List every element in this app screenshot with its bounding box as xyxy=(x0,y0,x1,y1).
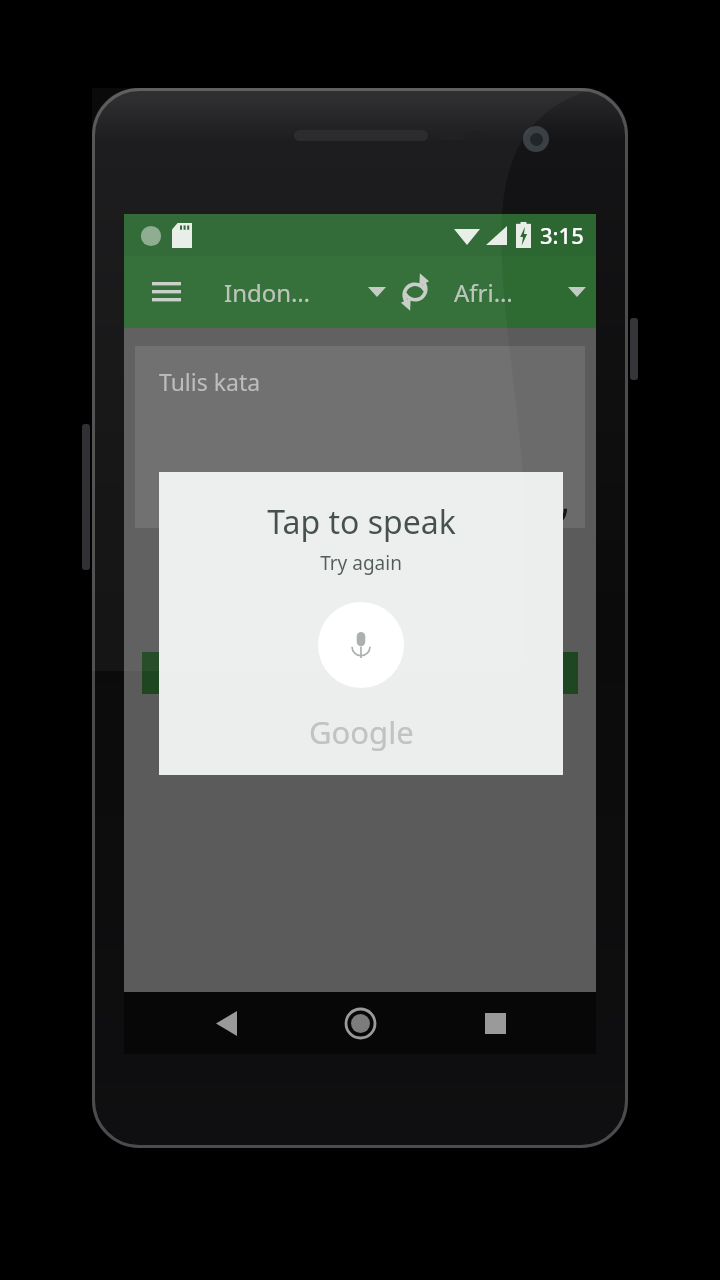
staticText: Google xyxy=(309,711,414,753)
button[interactable]: Voice input xyxy=(525,480,571,526)
button[interactable]: Indon… xyxy=(224,263,386,321)
button[interactable]: Tap to speak xyxy=(318,602,404,688)
button[interactable]: Recents xyxy=(462,992,528,1054)
button[interactable]: Home xyxy=(327,992,393,1054)
button[interactable]: Back xyxy=(193,992,259,1054)
button[interactable]: Afri… xyxy=(454,263,586,321)
staticText: Tap to speak xyxy=(267,500,456,544)
staticText: Tulis kata xyxy=(159,366,261,397)
staticText: 3:15 xyxy=(540,220,584,250)
button[interactable]: Tulis kata xyxy=(135,346,585,528)
button[interactable]: Swap languages xyxy=(386,263,444,321)
staticText: Indon… xyxy=(224,276,311,309)
button[interactable]: Menu xyxy=(138,264,194,320)
button[interactable] xyxy=(142,652,578,694)
staticText: Afri… xyxy=(454,276,513,309)
staticText: Try again xyxy=(320,550,402,576)
